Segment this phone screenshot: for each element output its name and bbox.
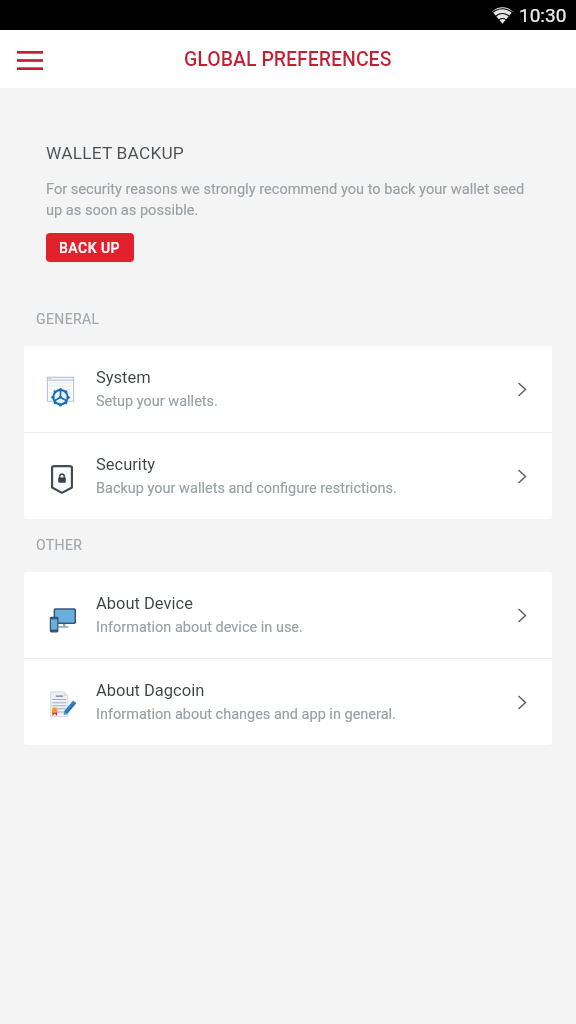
button[interactable]: About Dagcoin [24, 659, 552, 745]
staticText: WALLET BACKUP [46, 143, 184, 163]
staticText: For security reasons we strongly recomme… [46, 180, 536, 219]
button[interactable]: System [24, 346, 552, 432]
staticText: Security [96, 455, 156, 474]
staticText: GLOBAL PREFERENCES [184, 48, 392, 71]
button[interactable]: About Device [24, 572, 552, 658]
staticText: About Dagcoin [96, 681, 205, 700]
staticText: Information about device in use. [96, 619, 303, 636]
staticText: 10:30 [519, 4, 567, 26]
staticText: OTHER [36, 537, 83, 553]
staticText: BACK UP [59, 240, 121, 256]
staticText: About Device [96, 594, 193, 613]
staticText: Information about changes and app in gen… [96, 706, 396, 723]
staticText: Backup your wallets and configure restri… [96, 480, 397, 497]
staticText: GENERAL [36, 311, 100, 327]
staticText: Setup your wallets. [96, 393, 218, 410]
staticText: System [96, 368, 151, 387]
button[interactable]: Security [24, 433, 552, 519]
button[interactable]: BACK UP [46, 233, 134, 262]
button[interactable]: Open navigation menu [6, 36, 54, 84]
